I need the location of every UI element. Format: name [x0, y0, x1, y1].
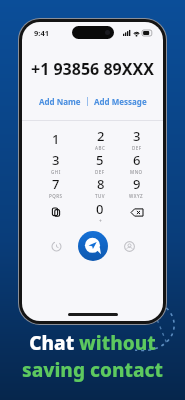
button[interactable]: Add Message [88, 93, 153, 110]
staticText: 5 [96, 151, 104, 169]
button[interactable]: 0 [78, 200, 122, 224]
staticText: PQRS [49, 193, 63, 199]
button[interactable]: Recent calls [43, 233, 69, 259]
button[interactable]: Contacts [116, 233, 142, 259]
staticText: 3 [133, 127, 141, 145]
staticText: TUV [95, 193, 106, 199]
staticText: +1 93856 89XXX [31, 58, 154, 80]
staticText: Add Message [94, 96, 147, 107]
staticText: Chat without [29, 330, 156, 356]
staticText: saving contact [22, 357, 163, 383]
staticText: GHI [51, 169, 61, 175]
button[interactable]: Backspace [122, 200, 151, 224]
staticText: 1 [52, 130, 60, 148]
button[interactable]: 8 [78, 175, 122, 199]
staticText: + [99, 218, 102, 224]
button[interactable]: 3 [122, 127, 151, 151]
staticText: MNO [130, 169, 143, 175]
button[interactable]: 3 [34, 151, 78, 175]
button[interactable]: Send message [78, 231, 108, 261]
button[interactable]: 1 [34, 127, 78, 151]
button[interactable]: 7 [34, 175, 78, 199]
staticText: Add Name [39, 96, 81, 107]
staticText: 0 [96, 200, 104, 218]
button[interactable]: 6 [122, 151, 151, 175]
staticText: ABC [95, 145, 106, 151]
button[interactable]: 5 [78, 151, 122, 175]
staticText: 3 [52, 151, 60, 169]
staticText: 6 [133, 151, 141, 169]
staticText: 2 [97, 127, 105, 145]
staticText: DEF [95, 169, 105, 175]
staticText: DEF [132, 145, 142, 151]
button[interactable]: Paste [34, 200, 78, 224]
staticText: 7 [52, 175, 60, 193]
staticText: 8 [97, 175, 105, 193]
button[interactable]: Add Name [33, 93, 87, 110]
button[interactable]: 2 [78, 127, 122, 151]
staticText: WXYZ [129, 193, 144, 199]
staticText: 9:41 [34, 28, 49, 38]
button[interactable]: 9 [122, 175, 151, 199]
staticText: 9 [133, 175, 141, 193]
